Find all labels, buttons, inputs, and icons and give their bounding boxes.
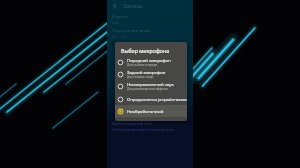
staticText: Для равномерного эффекта (127, 87, 168, 91)
button[interactable]: Определяется устройствами (115, 93, 187, 105)
staticText: 44,1 кГц (112, 34, 127, 39)
button[interactable]: Формат (107, 13, 193, 25)
staticText: Передний микрофон (127, 57, 171, 63)
staticText: AAC (112, 20, 120, 25)
staticText: Запись (123, 2, 143, 10)
button[interactable]: Выбор микрофона (107, 120, 193, 132)
staticText: Необработанный (исходный) звук (112, 127, 175, 132)
button[interactable]: Задний микрофон (115, 68, 187, 80)
staticText: Для съёмки спереди (127, 63, 158, 67)
staticText: Разрешение звука (112, 27, 151, 33)
staticText: Необработанный (исходный) (127, 108, 187, 114)
button[interactable]: Back (110, 1, 119, 10)
staticText: Формат (112, 13, 129, 19)
staticText: Задний микрофон (127, 69, 166, 75)
button[interactable]: Разрешение звука (107, 27, 193, 39)
staticText: Определяется устройствами (127, 96, 187, 102)
staticText: Выбор микрофона (112, 120, 152, 126)
button[interactable]: Необработанный (исходный) (115, 105, 187, 117)
staticText: Ненаправленный звук (127, 81, 174, 87)
button[interactable]: Ненаправленный звук (115, 80, 187, 92)
button[interactable]: Передний микрофон (115, 56, 187, 68)
staticText: Для съёмки сзади (127, 75, 154, 79)
staticText: Выбор микрофона (121, 47, 170, 54)
